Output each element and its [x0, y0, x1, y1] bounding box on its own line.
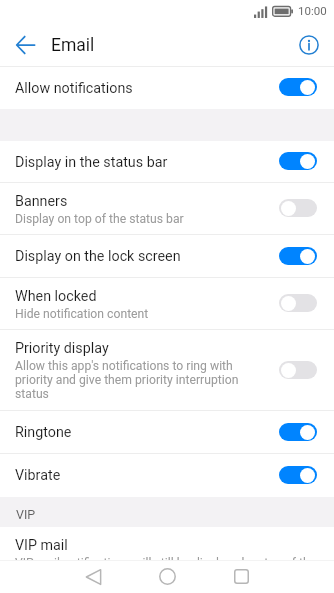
staticText: VIP mail notifications will still be dis…: [15, 556, 317, 560]
button[interactable]: Allow notifications: [0, 67, 334, 109]
button[interactable]: VIP mail: [0, 527, 334, 560]
button[interactable]: Display in the status bar: [0, 141, 334, 183]
staticText: Display in the status bar: [15, 154, 168, 171]
staticText: Allow this app's notifications to ring w…: [15, 359, 267, 401]
button[interactable]: Recent apps: [220, 560, 262, 593]
button[interactable]: Switch off: [279, 199, 317, 217]
button[interactable]: Switch on: [279, 247, 317, 265]
staticText: Display on the lock screen: [15, 248, 181, 265]
button[interactable]: Priority display: [0, 330, 334, 411]
button[interactable]: Banners: [0, 183, 334, 235]
staticText: VIP mail: [15, 537, 68, 554]
staticText: When locked: [15, 288, 97, 305]
button[interactable]: Switch on: [279, 466, 317, 484]
button[interactable]: Switch on: [279, 152, 317, 170]
staticText: Vibrate: [15, 467, 61, 484]
staticText: Banners: [15, 193, 68, 210]
button[interactable]: Ringtone: [0, 411, 334, 454]
staticText: Hide notification content: [15, 307, 149, 321]
button[interactable]: Switch on: [279, 423, 317, 441]
staticText: Allow notifications: [15, 80, 133, 97]
button[interactable]: When locked: [0, 278, 334, 330]
button[interactable]: Switch off: [279, 294, 317, 312]
button[interactable]: Back: [72, 560, 114, 593]
staticText: 10:00: [298, 4, 327, 17]
staticText: Display on top of the status bar: [15, 212, 184, 226]
button[interactable]: Display on the lock screen: [0, 235, 334, 278]
button[interactable]: Back: [6, 23, 44, 67]
button[interactable]: Info: [290, 23, 328, 67]
staticText: Ringtone: [15, 424, 72, 441]
button[interactable]: Switch on: [279, 78, 317, 96]
button[interactable]: Home: [146, 560, 188, 593]
button[interactable]: Vibrate: [0, 454, 334, 497]
staticText: Email: [51, 35, 95, 56]
button[interactable]: Switch off: [279, 361, 317, 379]
staticText: VIP: [16, 507, 36, 522]
staticText: Priority display: [15, 340, 109, 357]
